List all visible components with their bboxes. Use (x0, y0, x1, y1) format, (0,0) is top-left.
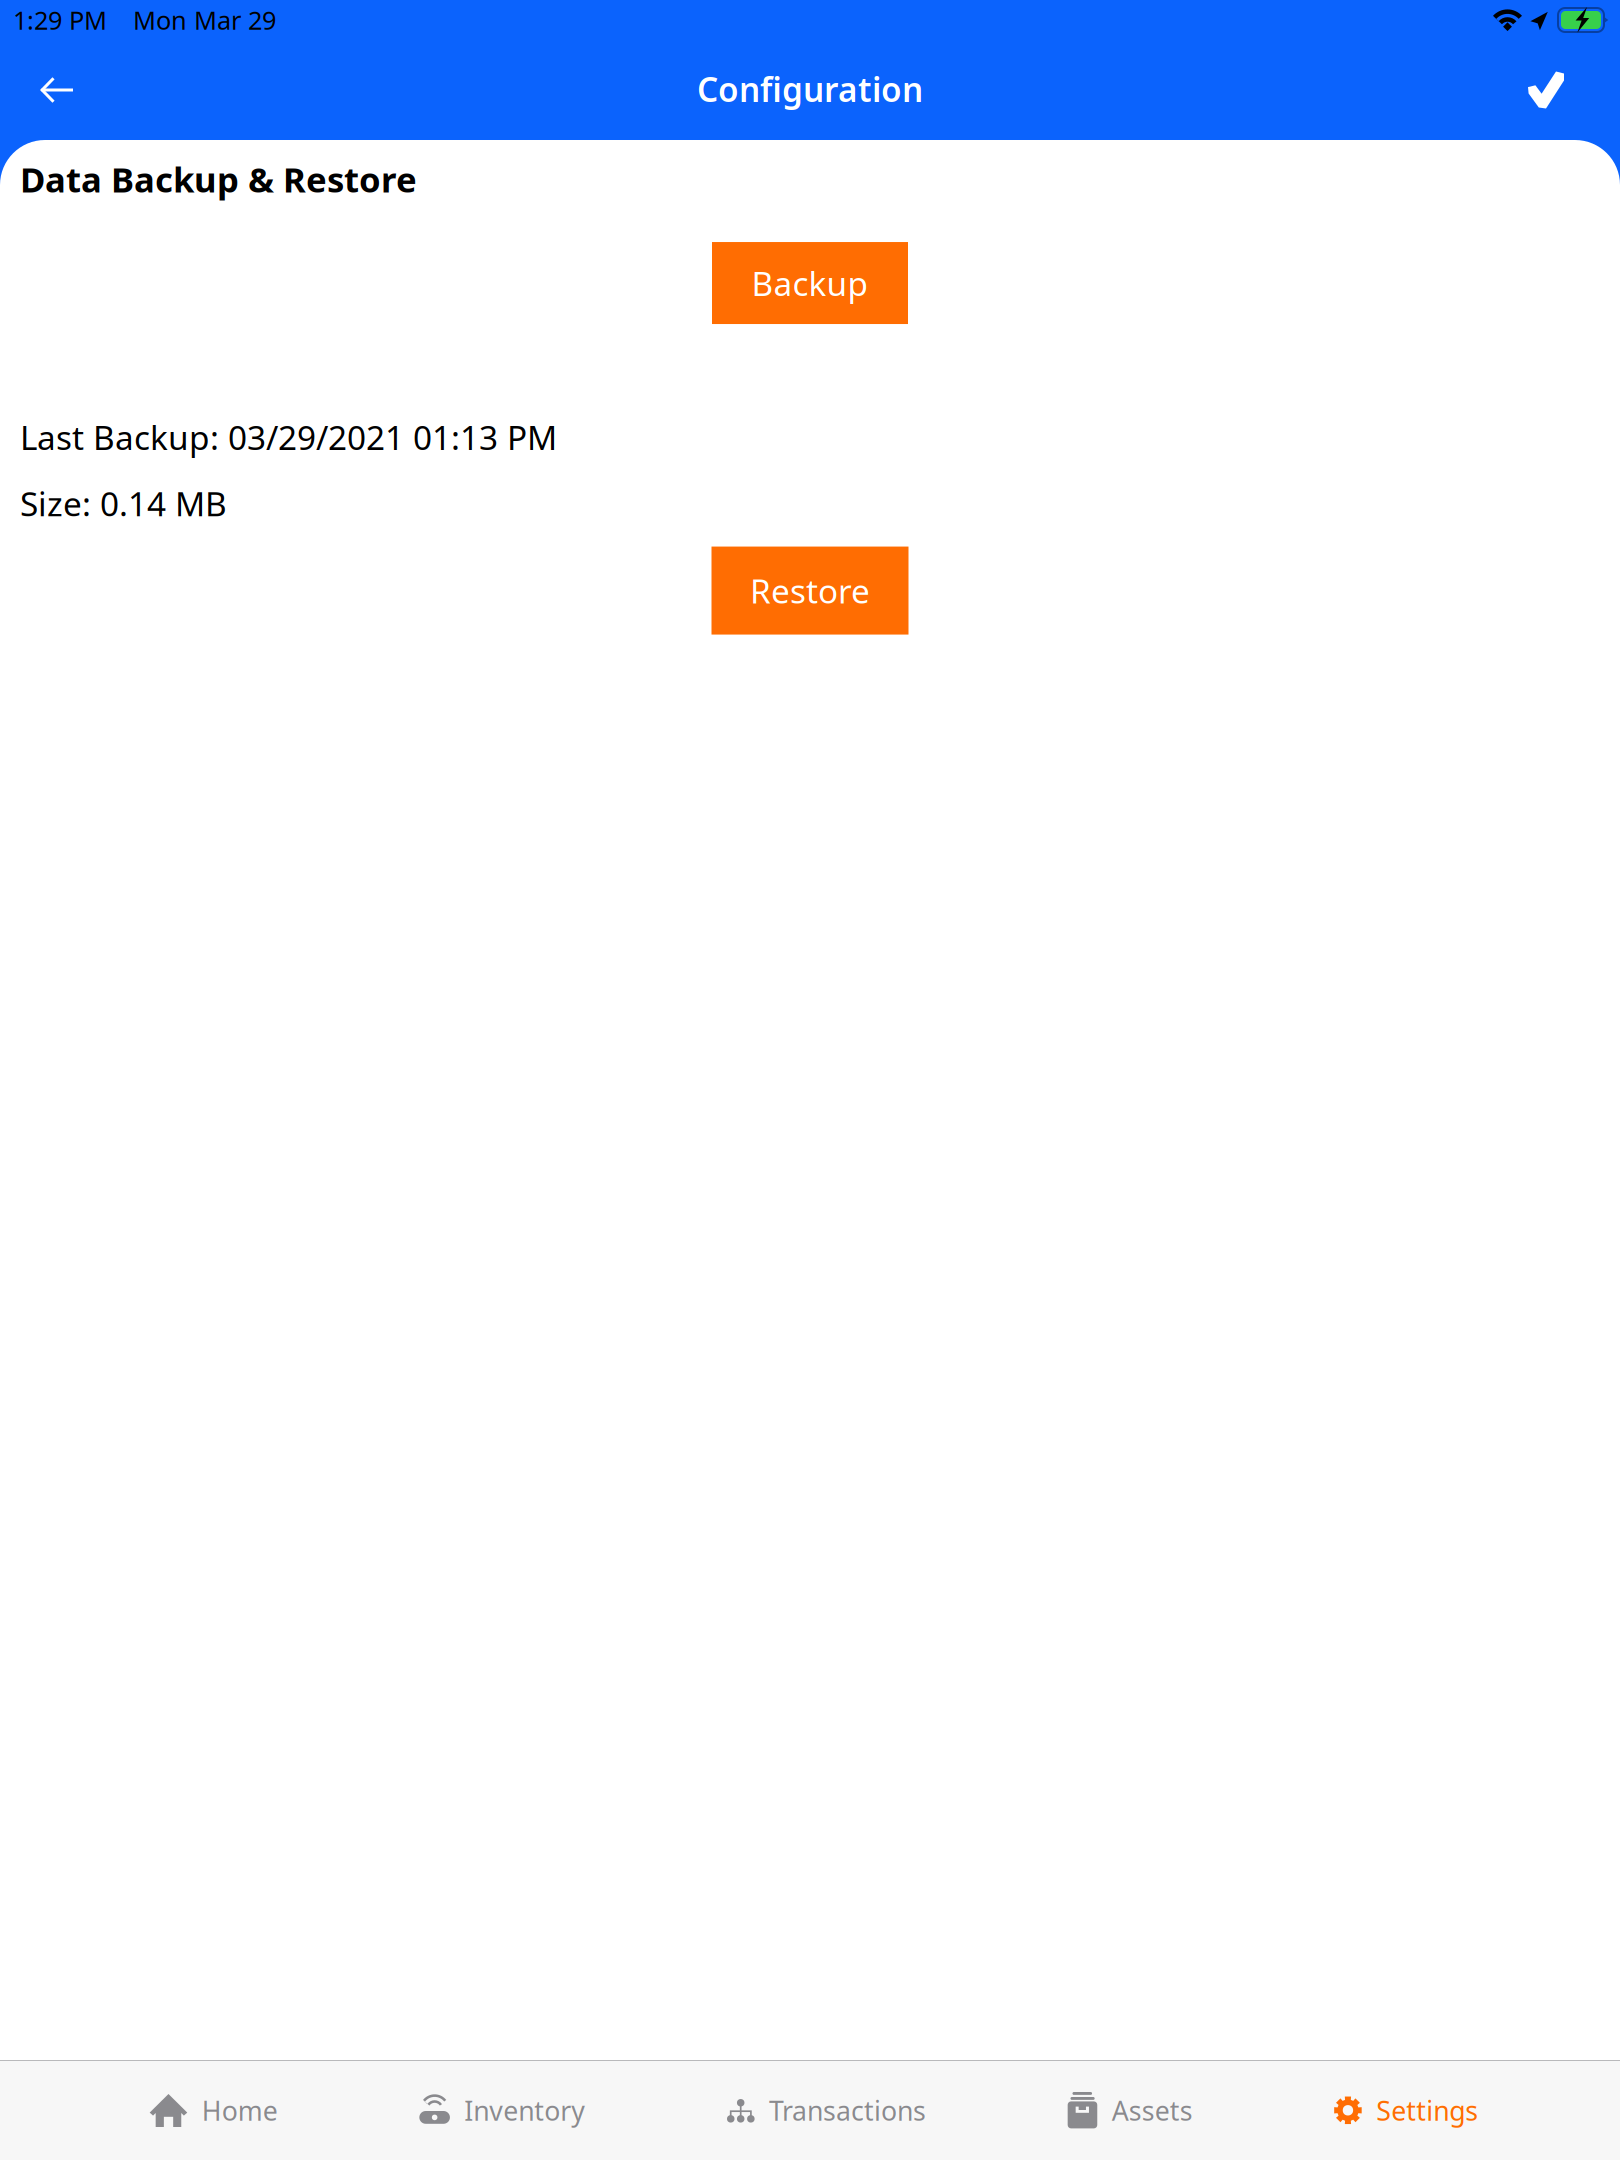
staticText: Last Backup: 03/29/2021 01:13 PM (20, 415, 557, 459)
button[interactable]: Inventory (419, 2082, 585, 2139)
staticText: Settings (1376, 2093, 1478, 2128)
staticText: Inventory (464, 2093, 585, 2128)
button[interactable]: Backup (712, 242, 908, 324)
button[interactable]: Restore (711, 547, 908, 635)
staticText: Size: 0.14 MB (20, 481, 227, 526)
button[interactable]: Transactions (727, 2082, 926, 2139)
button[interactable]: Home (150, 2082, 278, 2139)
staticText: Transactions (769, 2093, 926, 2128)
button[interactable]: Back (20, 40, 94, 140)
button[interactable]: Assets (1068, 2082, 1193, 2139)
staticText: Restore (750, 568, 870, 613)
staticText: Assets (1112, 2093, 1193, 2128)
button[interactable]: Done (1509, 40, 1583, 140)
staticText: 1:29 PM (13, 3, 107, 37)
button[interactable]: Settings (1334, 2082, 1478, 2139)
staticText: Mon Mar 29 (133, 3, 276, 37)
staticText: Home (202, 2093, 278, 2128)
staticText: Data Backup & Restore (20, 156, 417, 202)
staticText: Configuration (697, 67, 923, 111)
staticText: Backup (751, 261, 868, 305)
